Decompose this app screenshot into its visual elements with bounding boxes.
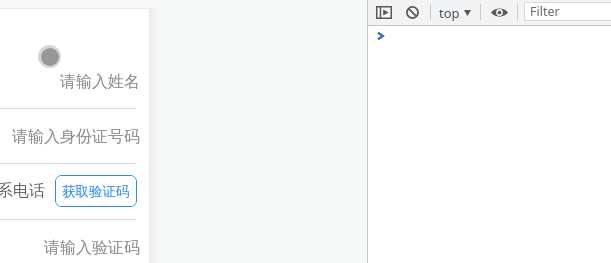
staticText: 请输入验证码 xyxy=(44,238,140,258)
button[interactable]: 获取验证码 xyxy=(55,175,137,207)
staticText: 获取验证码 xyxy=(62,183,130,200)
staticText: Filter xyxy=(530,3,560,20)
button[interactable]: Create live expression xyxy=(488,2,510,23)
staticText: 请输入姓名 xyxy=(60,72,140,92)
staticText: top xyxy=(439,4,460,22)
button[interactable]: 请输入身份证号码 xyxy=(2,109,140,163)
button[interactable]: Clear console xyxy=(402,2,422,22)
staticText: 联系电话 xyxy=(0,181,45,201)
button[interactable]: 请输入姓名 xyxy=(2,69,140,104)
button[interactable]: Show console sidebar xyxy=(374,2,394,22)
button[interactable]: 请输入验证码 xyxy=(2,220,140,263)
button[interactable]: Upload avatar xyxy=(38,45,61,68)
staticText: 请输入身份证号码 xyxy=(12,127,140,147)
button[interactable]: Filter xyxy=(524,2,611,21)
button[interactable]: top xyxy=(439,2,471,23)
